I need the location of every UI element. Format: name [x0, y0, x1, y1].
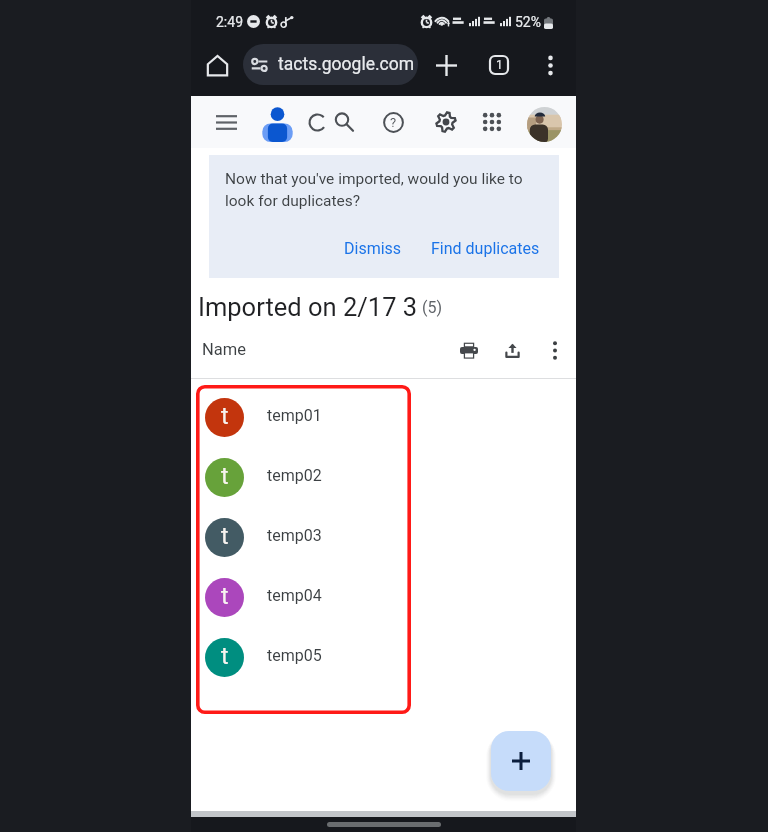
button[interactable]: More options [532, 47, 568, 83]
staticText: t [221, 523, 229, 550]
button[interactable]: t [191, 447, 576, 507]
staticText: Now that you've imported, would you like… [225, 170, 523, 210]
button[interactable]: Help [375, 104, 411, 140]
staticText: Imported on 2/17 3 [198, 292, 418, 322]
button[interactable]: Home [199, 47, 235, 83]
button[interactable]: More options [539, 334, 571, 366]
staticText: 1 [496, 58, 503, 72]
button[interactable]: t [191, 567, 576, 627]
button[interactable]: Export [496, 334, 528, 366]
button[interactable]: Print [453, 334, 485, 366]
staticText: (5) [422, 298, 443, 317]
staticText: temp05 [267, 646, 322, 665]
staticText: 2:49 [216, 14, 243, 30]
staticText: ? [390, 115, 397, 130]
staticText: t [221, 643, 229, 670]
staticText: temp04 [267, 586, 322, 605]
button[interactable]: Tabs [481, 47, 517, 83]
staticText: t [221, 583, 229, 610]
button[interactable]: Menu [208, 104, 244, 140]
button[interactable]: t [191, 387, 576, 447]
staticText: Dismiss [344, 239, 402, 258]
staticText: Name [202, 340, 246, 359]
staticText: t [221, 403, 229, 430]
button[interactable]: Create contact [491, 731, 551, 791]
button[interactable]: t [191, 627, 576, 687]
button[interactable]: Account [527, 107, 562, 142]
staticText: t [221, 463, 229, 490]
button[interactable]: Refresh [299, 104, 335, 140]
staticText: temp02 [267, 466, 322, 485]
button[interactable]: Find duplicates [421, 231, 550, 266]
staticText: temp03 [267, 526, 322, 545]
staticText: Find duplicates [431, 239, 540, 258]
button[interactable]: Search [326, 104, 362, 140]
button[interactable]: t [191, 507, 576, 567]
staticText: temp01 [267, 406, 322, 425]
button[interactable]: Settings [428, 104, 464, 140]
button[interactable]: New tab [428, 47, 464, 83]
button[interactable]: tacts.google.com [243, 44, 418, 85]
staticText: tacts.google.com [278, 54, 415, 75]
staticText: 52% [515, 14, 541, 30]
button[interactable]: Dismiss [334, 231, 412, 266]
button[interactable]: Google apps [474, 104, 510, 140]
